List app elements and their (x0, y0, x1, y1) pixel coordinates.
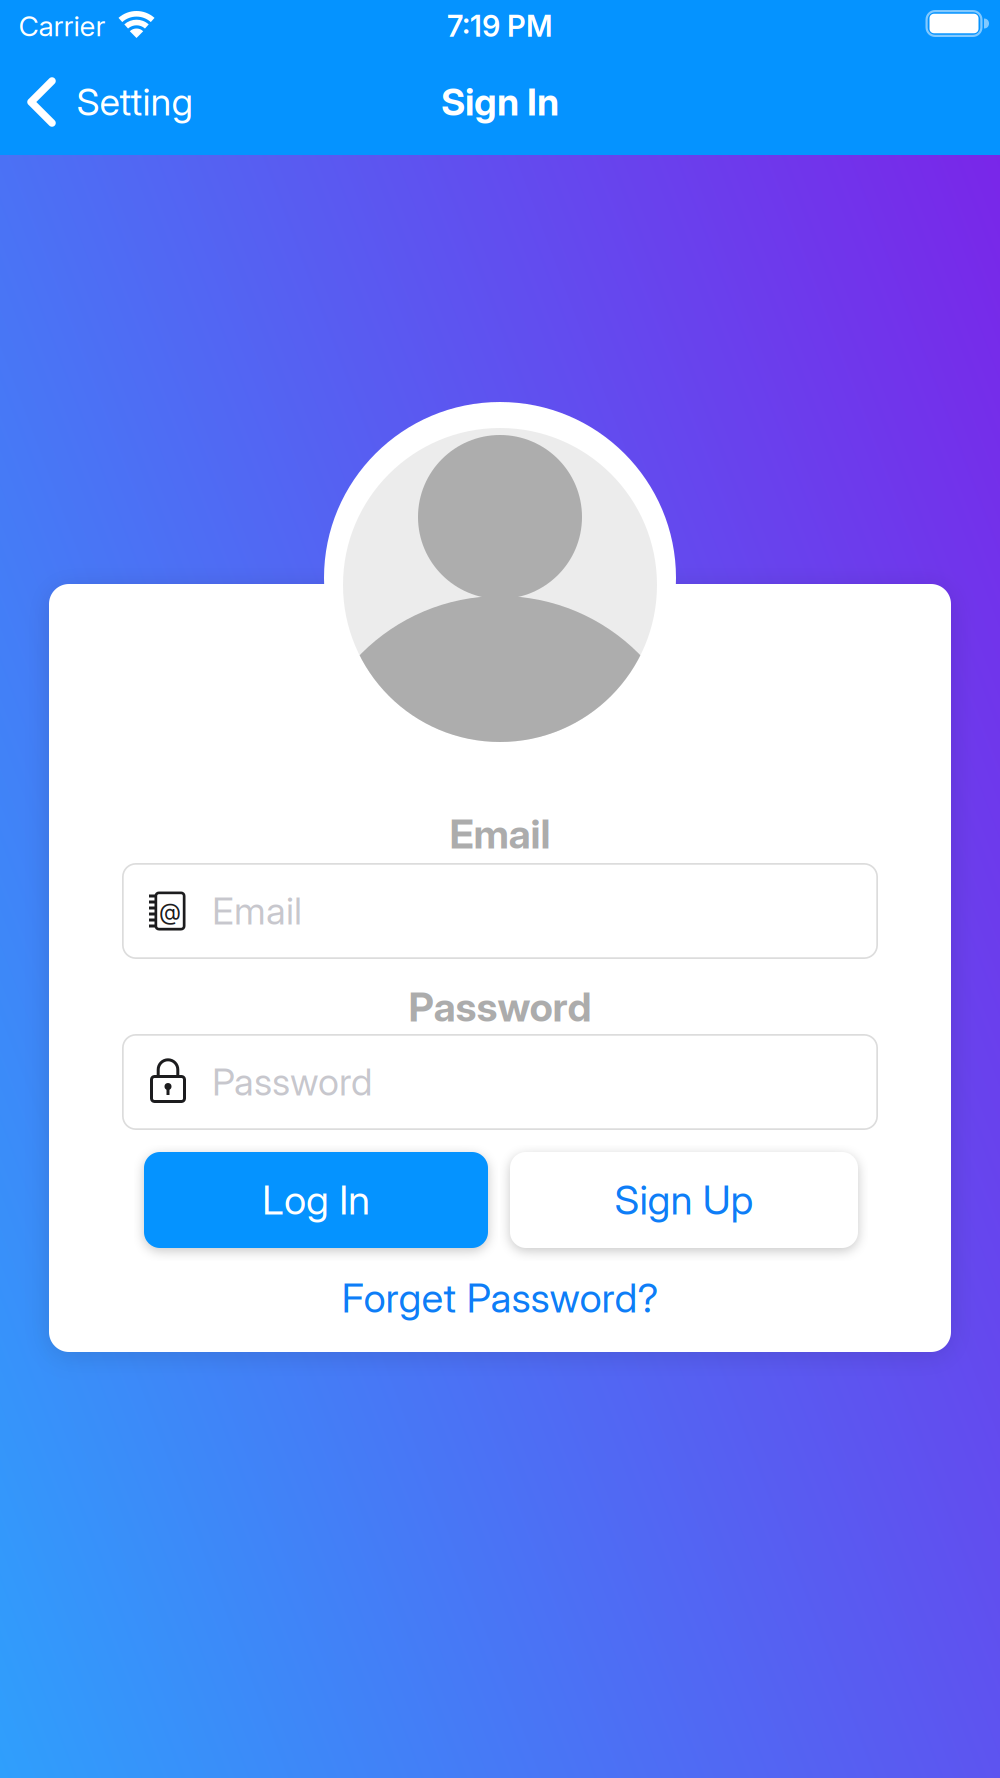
button[interactable]: Log In (144, 1152, 488, 1248)
staticText: 7:19 PM (447, 9, 553, 43)
button[interactable]: Forget Password? (341, 1274, 658, 1322)
staticText: Setting (76, 80, 193, 124)
button[interactable]: @ (122, 863, 878, 959)
staticText: Password (408, 983, 591, 1031)
button[interactable]: Sign Up (510, 1152, 858, 1248)
staticText: @ (159, 898, 181, 925)
staticText: Carrier (18, 9, 105, 42)
staticText: Forget Password? (341, 1274, 658, 1322)
staticText: Email (212, 889, 302, 933)
staticText: Password (212, 1060, 372, 1104)
staticText: Email (449, 810, 550, 858)
button[interactable]: Back to Setting (21, 67, 221, 137)
staticText: Log In (262, 1176, 370, 1224)
staticText: Sign In (441, 80, 559, 124)
staticText: Sign Up (614, 1176, 753, 1224)
button[interactable]: Password (122, 1034, 878, 1130)
